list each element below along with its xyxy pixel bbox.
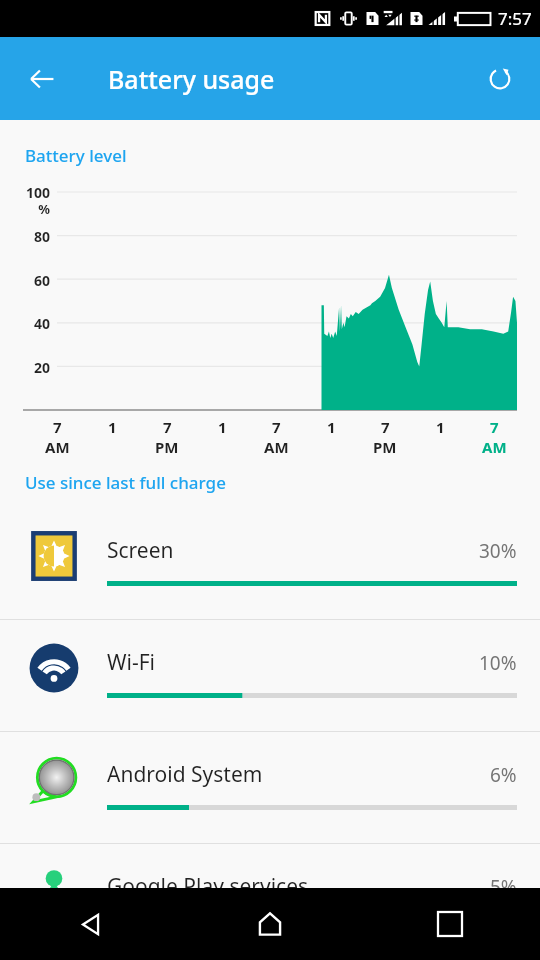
button[interactable]: Back (14, 51, 70, 107)
staticText: Wi-Fi (107, 648, 156, 677)
staticText: 80 (0, 227, 50, 246)
button[interactable]: Home (180, 888, 360, 960)
staticText: 10% (479, 650, 517, 676)
staticText: Android System (107, 760, 263, 789)
staticText: 20 (0, 358, 50, 377)
staticText: 7 (53, 417, 62, 437)
staticText: 1 (436, 417, 445, 437)
staticText: 7 (381, 417, 390, 437)
button[interactable]: Back (0, 888, 180, 960)
staticText: 60 (0, 271, 50, 290)
staticText: 1 (218, 417, 227, 437)
staticText: Screen (107, 536, 174, 565)
staticText: 7 (272, 417, 281, 437)
staticText: 1 (108, 417, 117, 437)
staticText: % (0, 200, 50, 218)
staticText: 5% (490, 874, 517, 900)
staticText: 7 (163, 417, 172, 437)
staticText: 7:57 (498, 7, 532, 30)
staticText: 100 (0, 183, 50, 202)
button[interactable]: Refresh (472, 51, 528, 107)
staticText: PM (373, 437, 397, 457)
staticText: 7 (490, 417, 499, 437)
staticText: 40 (0, 314, 50, 333)
staticText: AM (264, 437, 289, 457)
button[interactable]: Android System (0, 732, 540, 843)
staticText: Use since last full charge (25, 471, 226, 494)
staticText: AM (482, 437, 507, 457)
button[interactable]: Wi-Fi (0, 620, 540, 731)
staticText: Google Play services (107, 872, 309, 901)
staticText: 1 (327, 417, 336, 437)
staticText: Battery usage (108, 62, 275, 96)
staticText: 30% (479, 538, 517, 564)
button[interactable]: Google Play services (0, 844, 540, 955)
staticText: AM (45, 437, 70, 457)
button[interactable]: Screen (0, 508, 540, 619)
button[interactable]: Recent apps (360, 888, 540, 960)
staticText: PM (155, 437, 179, 457)
staticText: Battery level (25, 144, 127, 167)
staticText: 6% (490, 762, 517, 788)
